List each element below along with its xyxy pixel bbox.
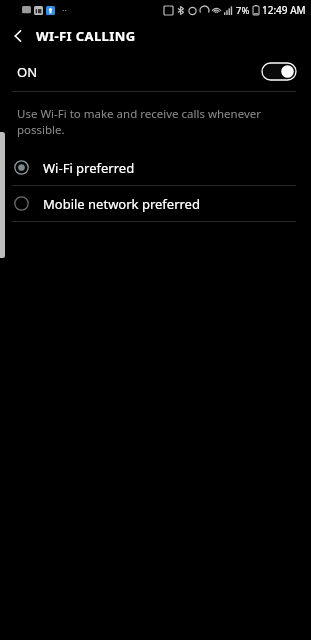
button[interactable]: Wi-Fi preferred [0, 150, 311, 185]
staticText: 12:49 AM [262, 3, 306, 17]
button[interactable]: ON [0, 52, 311, 91]
button[interactable]: Mobile network preferred [0, 186, 311, 221]
staticText: ·· [62, 4, 67, 16]
button[interactable]: Back [0, 20, 36, 52]
staticText: Mobile network preferred [43, 195, 200, 213]
staticText: ON [17, 63, 38, 81]
staticText: Use Wi-Fi to make and receive calls when… [17, 106, 299, 138]
staticText: 7% [236, 4, 250, 17]
staticText: Wi-Fi preferred [43, 159, 135, 177]
staticText: WI-FI CALLING [36, 27, 136, 45]
